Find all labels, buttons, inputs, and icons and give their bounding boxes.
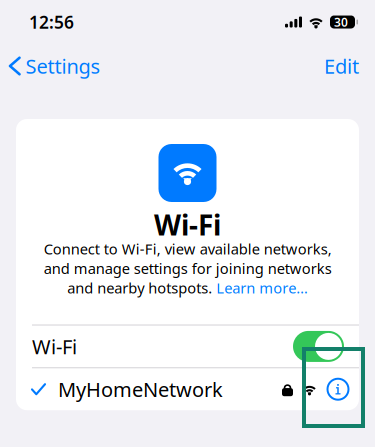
button[interactable]: Edit xyxy=(314,45,359,87)
staticText: MyHomeNetwork xyxy=(58,376,223,402)
staticText: 12:56 xyxy=(29,10,74,33)
button[interactable]: MyHomeNetwork xyxy=(16,368,359,410)
button[interactable]: Settings xyxy=(10,45,110,87)
staticText: Connect to Wi-Fi, view available network… xyxy=(43,239,331,298)
staticText: Settings xyxy=(25,53,100,79)
button[interactable]: Wi-Fi xyxy=(16,325,359,367)
staticText: Wi-Fi xyxy=(154,206,221,243)
staticText: 30 xyxy=(334,14,348,30)
staticText: Edit xyxy=(324,53,359,79)
button[interactable]: Network information xyxy=(317,368,359,410)
staticText: Wi-Fi xyxy=(32,333,77,360)
